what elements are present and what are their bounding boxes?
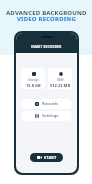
button[interactable]: RAM (48, 68, 72, 89)
button[interactable]: Settings (21, 111, 72, 121)
staticText: Records (42, 101, 58, 107)
staticText: START (44, 155, 57, 160)
staticText: Settings (42, 113, 59, 119)
staticText: 512.23 MB (50, 83, 71, 88)
staticText: Storage (28, 78, 39, 82)
button[interactable]: START (30, 153, 63, 162)
staticText: RAM (57, 78, 64, 82)
button[interactable]: Storage (21, 68, 45, 89)
staticText: VIDEO RECORDING (17, 15, 76, 23)
button[interactable]: Records (21, 99, 72, 109)
staticText: 15.8 GB (26, 83, 41, 88)
staticText: ADVANCED BACKGROUND (6, 9, 87, 17)
staticText: SMART RECORDER (31, 45, 62, 49)
